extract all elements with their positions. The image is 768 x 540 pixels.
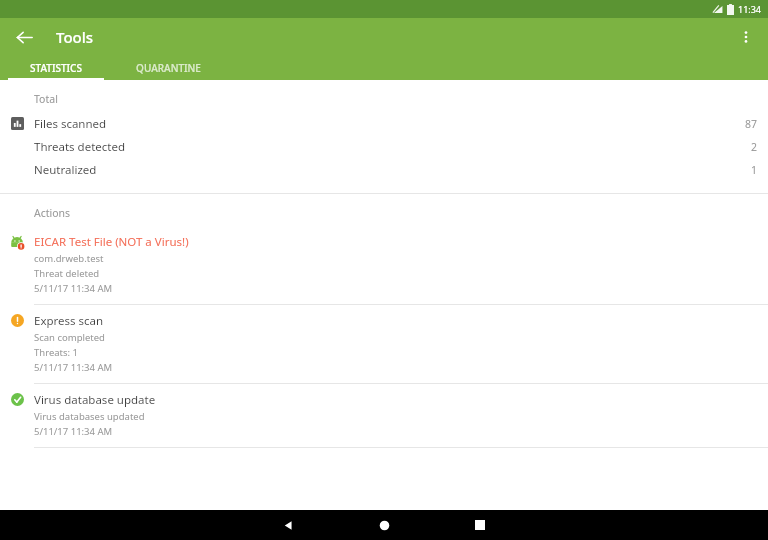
button[interactable]: Files scanned — [0, 112, 768, 135]
staticText: 87 — [745, 117, 758, 131]
staticText: Virus database update — [34, 392, 156, 408]
button[interactable]: STATISTICS — [0, 56, 112, 80]
button[interactable]: EICAR Test File (NOT a Virus!) — [0, 226, 768, 304]
staticText: Threats: 1 — [34, 346, 79, 359]
staticText: Scan completed — [34, 331, 105, 344]
button[interactable]: More options — [730, 21, 762, 53]
button[interactable]: Recent apps — [456, 510, 504, 540]
staticText: Files scanned — [34, 116, 107, 132]
staticText: 5/11/17 11:34 AM — [34, 425, 113, 438]
button[interactable]: Home — [360, 510, 408, 540]
staticText: 11:34 — [738, 3, 762, 15]
staticText: Neutralized — [34, 162, 97, 178]
staticText: 2 — [751, 140, 758, 154]
button[interactable]: QUARANTINE — [112, 56, 224, 80]
button[interactable]: Express scan — [0, 305, 768, 383]
staticText: 1 — [751, 163, 758, 177]
staticText: Total — [34, 92, 58, 106]
staticText: STATISTICS — [30, 61, 82, 75]
button[interactable]: Back — [8, 21, 40, 53]
staticText: Tools — [56, 27, 94, 47]
staticText: Threats detected — [34, 139, 126, 155]
staticText: 5/11/17 11:34 AM — [34, 282, 113, 295]
staticText: QUARANTINE — [136, 61, 201, 75]
staticText: Threat deleted — [34, 267, 100, 280]
button[interactable]: Neutralized — [0, 158, 768, 181]
staticText: 5/11/17 11:34 AM — [34, 361, 113, 374]
button[interactable]: Back — [264, 510, 312, 540]
staticText: com.drweb.test — [34, 252, 104, 265]
button[interactable]: Threats detected — [0, 135, 768, 158]
staticText: Actions — [34, 206, 71, 220]
staticText: Virus databases updated — [34, 410, 145, 423]
staticText: Express scan — [34, 313, 104, 329]
button[interactable]: Virus database update — [0, 384, 768, 447]
staticText: EICAR Test File (NOT a Virus!) — [34, 234, 189, 250]
